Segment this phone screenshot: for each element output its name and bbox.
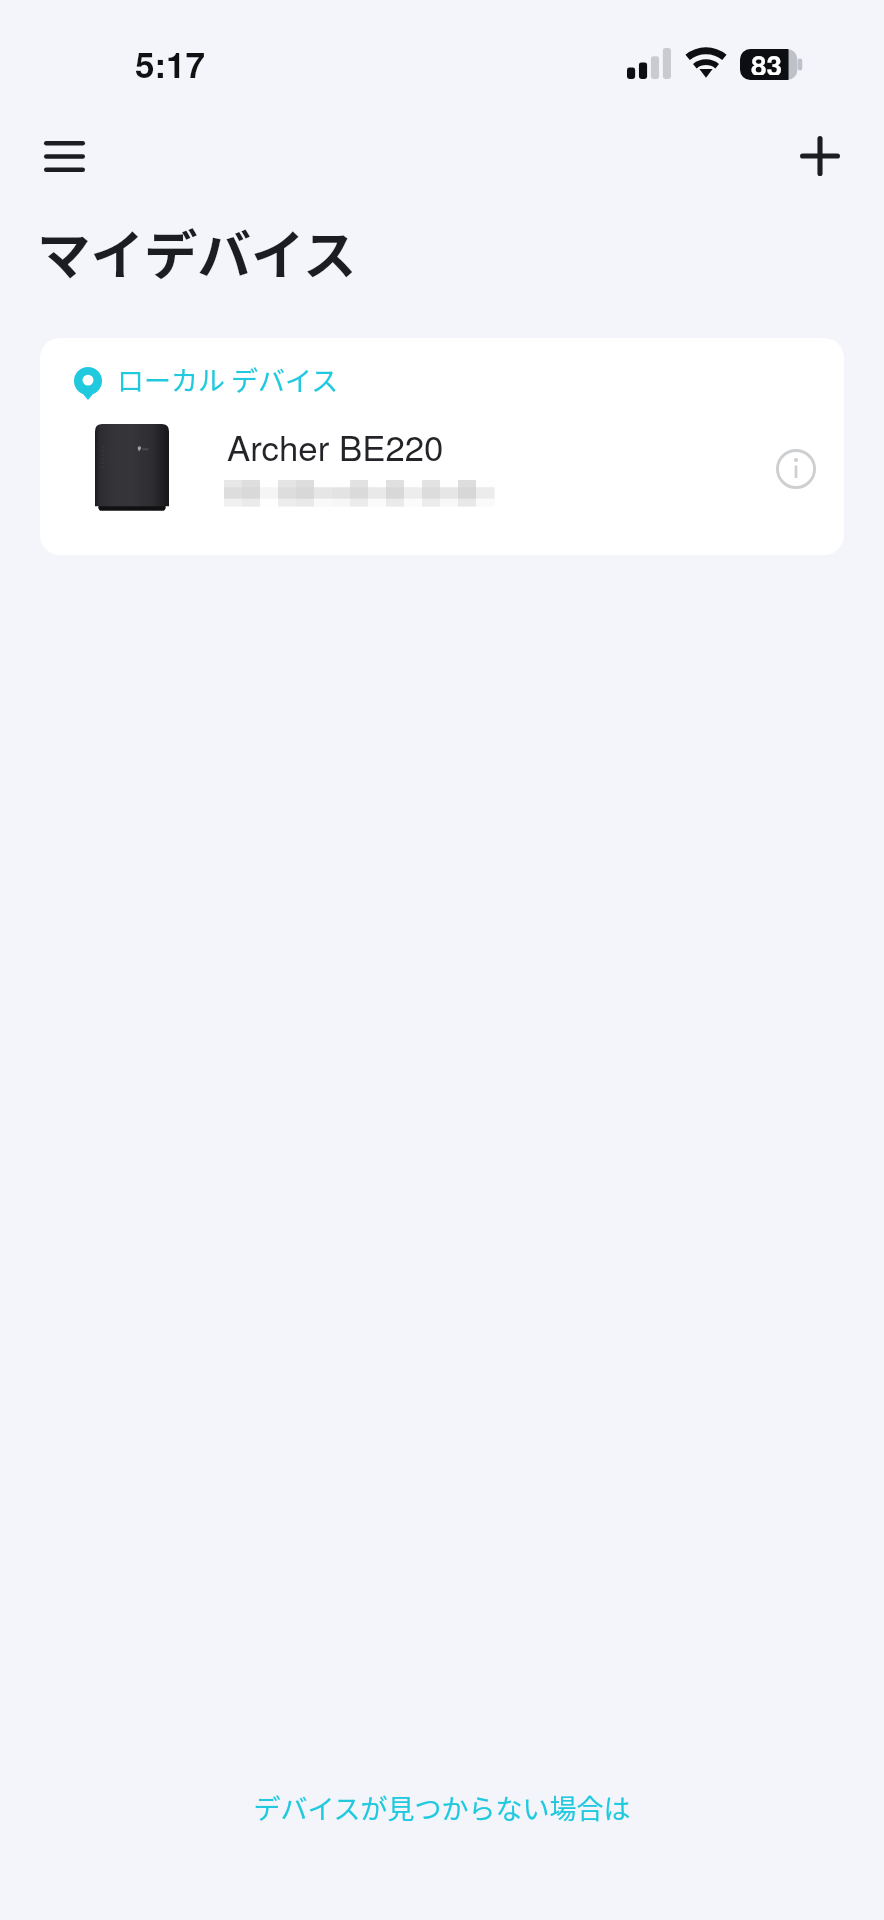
button[interactable]: Device info [764,437,828,501]
staticText: 5:17 [135,39,206,89]
staticText: ローカル デバイス [117,360,339,399]
staticText: マイデバイス [37,213,357,290]
button[interactable]: Add device [780,126,860,186]
button[interactable]: デバイスが見つからない場合は [0,1780,884,1834]
button[interactable]: ローカル デバイス [40,338,844,555]
staticText: デバイスが見つからない場合は [253,1788,631,1827]
staticText: Archer BE220 [227,421,444,471]
button[interactable]: Menu [24,126,104,186]
staticText: 83 [751,44,783,75]
